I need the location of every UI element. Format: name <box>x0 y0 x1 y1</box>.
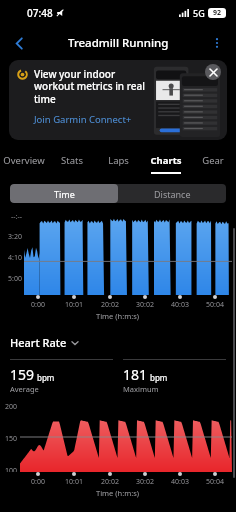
staticText: Join Garmin Connect+ <box>34 113 132 126</box>
staticText: bpm <box>37 372 55 383</box>
staticText: 5G <box>193 7 205 19</box>
staticText: Distance <box>154 188 191 200</box>
staticText: 10:01 <box>65 300 83 310</box>
button[interactable]: More options <box>203 29 231 57</box>
staticText: 20:02 <box>101 300 119 310</box>
staticText: Heart Rate <box>10 335 67 350</box>
staticText: Time (h:m:s) <box>96 488 140 498</box>
staticText: Stats <box>61 154 83 167</box>
button[interactable]: Laps <box>95 146 142 174</box>
staticText: 30:02 <box>136 477 154 487</box>
staticText: Time <box>54 188 75 200</box>
staticText: 50:04 <box>206 477 224 487</box>
button[interactable]: Distance <box>118 184 226 203</box>
staticText: 92 <box>213 8 222 18</box>
staticText: Gear <box>202 154 224 167</box>
staticText: Laps <box>108 154 129 167</box>
staticText: Charts <box>150 154 182 167</box>
staticText: 150 <box>5 434 18 444</box>
staticText: --:-- <box>11 212 22 222</box>
button[interactable]: Stats <box>48 146 95 174</box>
staticText: 5:00 <box>8 274 22 284</box>
button[interactable]: Join Garmin Connect+ <box>34 113 132 126</box>
staticText: View your indoor workout metrics in real… <box>34 67 147 106</box>
staticText: 30:02 <box>136 300 154 310</box>
button[interactable]: Dismiss <box>205 64 221 80</box>
button[interactable]: Charts <box>142 146 189 174</box>
button[interactable]: Back <box>4 28 34 58</box>
staticText: 50:04 <box>206 300 224 310</box>
staticText: 159 <box>10 365 35 384</box>
button[interactable]: Overview <box>0 146 48 174</box>
button[interactable]: Heart Rate <box>10 335 79 350</box>
button[interactable]: Time <box>10 184 118 203</box>
button[interactable]: View your indoor workout metrics in real… <box>9 60 227 140</box>
staticText: Overview <box>3 154 45 167</box>
staticText: 40:03 <box>171 300 189 310</box>
staticText: 20:02 <box>101 477 119 487</box>
staticText: bpm <box>150 372 168 383</box>
button[interactable]: Gear <box>189 146 236 174</box>
staticText: 0:00 <box>31 300 45 310</box>
staticText: Time (h:m:s) <box>96 311 140 321</box>
staticText: Average <box>10 384 39 394</box>
staticText: 200 <box>5 402 18 412</box>
staticText: 181 <box>123 365 148 384</box>
staticText: Treadmill Running <box>68 35 169 51</box>
staticText: 07:48 <box>27 6 53 20</box>
staticText: 3:20 <box>8 232 22 242</box>
staticText: 10:01 <box>65 477 83 487</box>
staticText: 4:10 <box>8 253 22 263</box>
staticText: Maximum <box>123 384 159 394</box>
staticText: 100 <box>5 466 18 472</box>
staticText: 0:00 <box>31 477 45 487</box>
staticText: 40:03 <box>171 477 189 487</box>
